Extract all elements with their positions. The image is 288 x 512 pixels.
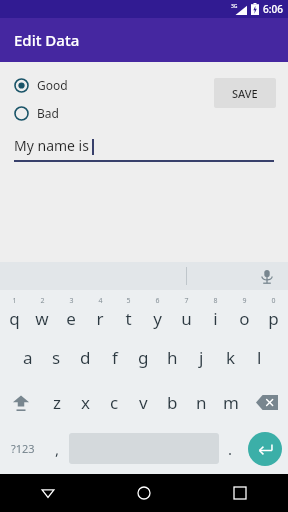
staticText: , bbox=[55, 439, 60, 459]
staticText: t bbox=[125, 307, 132, 330]
staticText: e bbox=[66, 307, 76, 330]
button[interactable]: 2 bbox=[28, 290, 56, 335]
button[interactable]: f bbox=[100, 335, 129, 380]
button[interactable]: . bbox=[219, 425, 242, 472]
button[interactable]: Voice input bbox=[258, 267, 276, 285]
staticText: c bbox=[110, 391, 119, 414]
button[interactable]: Home bbox=[96, 474, 192, 512]
button[interactable]: 1 bbox=[0, 290, 28, 335]
button[interactable]: v bbox=[129, 380, 158, 425]
staticText: a bbox=[23, 346, 33, 369]
staticText: r bbox=[96, 307, 104, 330]
staticText: j bbox=[199, 346, 204, 369]
staticText: 6 bbox=[155, 296, 160, 306]
button[interactable]: b bbox=[158, 380, 187, 425]
staticText: 8 bbox=[213, 296, 218, 306]
staticText: ?123 bbox=[11, 441, 35, 456]
staticText: 4 bbox=[98, 296, 103, 306]
staticText: . bbox=[228, 439, 233, 459]
button[interactable]: SAVE bbox=[214, 78, 276, 108]
staticText: Edit Data bbox=[14, 30, 80, 50]
staticText: SAVE bbox=[232, 86, 258, 101]
staticText: m bbox=[223, 391, 239, 414]
button[interactable]: My name is bbox=[14, 136, 274, 162]
button[interactable]: Recents bbox=[192, 474, 288, 512]
staticText: k bbox=[226, 346, 236, 369]
staticText: 0 bbox=[271, 296, 276, 306]
staticText: f bbox=[112, 346, 118, 369]
staticText: g bbox=[138, 346, 149, 369]
button[interactable]: 6 bbox=[143, 290, 172, 335]
staticText: h bbox=[167, 346, 178, 369]
staticText: 5 bbox=[126, 296, 131, 306]
button[interactable]: a bbox=[13, 335, 42, 380]
button[interactable]: g bbox=[129, 335, 158, 380]
staticText: s bbox=[52, 346, 61, 369]
staticText: b bbox=[167, 391, 178, 414]
staticText: u bbox=[181, 307, 192, 330]
button[interactable]: n bbox=[187, 380, 216, 425]
staticText: n bbox=[196, 391, 207, 414]
staticText: v bbox=[139, 391, 148, 414]
staticText: 3G bbox=[231, 3, 238, 10]
button[interactable]: c bbox=[100, 380, 129, 425]
staticText: o bbox=[239, 307, 250, 330]
staticText: p bbox=[268, 307, 279, 330]
staticText: 2 bbox=[40, 296, 45, 306]
button[interactable]: l bbox=[245, 335, 274, 380]
staticText: q bbox=[9, 307, 20, 330]
button[interactable]: , bbox=[46, 425, 69, 472]
staticText: My name is bbox=[14, 136, 89, 155]
button[interactable]: x bbox=[71, 380, 100, 425]
button[interactable]: d bbox=[71, 335, 100, 380]
staticText: Bad bbox=[37, 105, 59, 121]
button[interactable]: Shift bbox=[0, 380, 42, 425]
button[interactable]: 7 bbox=[172, 290, 201, 335]
staticText: w bbox=[35, 307, 49, 330]
button[interactable]: 8 bbox=[201, 290, 230, 335]
button[interactable]: 9 bbox=[230, 290, 259, 335]
staticText: 3 bbox=[69, 296, 74, 306]
staticText: z bbox=[53, 391, 61, 414]
button[interactable]: Back bbox=[0, 474, 96, 512]
button[interactable]: 3 bbox=[56, 290, 85, 335]
staticText: y bbox=[153, 307, 162, 330]
staticText: l bbox=[257, 346, 262, 369]
button[interactable]: ?123 bbox=[0, 425, 46, 472]
button[interactable]: z bbox=[42, 380, 71, 425]
button[interactable]: Backspace bbox=[245, 380, 288, 425]
staticText: x bbox=[81, 391, 90, 414]
button[interactable]: 0 bbox=[259, 290, 288, 335]
button[interactable]: j bbox=[187, 335, 216, 380]
button[interactable]: 4 bbox=[85, 290, 114, 335]
button[interactable]: Enter bbox=[248, 432, 282, 466]
staticText: 7 bbox=[184, 296, 189, 306]
staticText: d bbox=[80, 346, 91, 369]
button[interactable]: s bbox=[42, 335, 71, 380]
button[interactable]: Bad bbox=[0, 102, 128, 124]
button[interactable]: m bbox=[216, 380, 245, 425]
staticText: 9 bbox=[242, 296, 247, 306]
button[interactable]: 5 bbox=[114, 290, 143, 335]
staticText: i bbox=[213, 307, 218, 330]
staticText: Good bbox=[37, 77, 68, 93]
staticText: 6:06 bbox=[263, 2, 283, 16]
button[interactable]: k bbox=[216, 335, 245, 380]
button[interactable]: h bbox=[158, 335, 187, 380]
button[interactable]: Good bbox=[0, 74, 128, 96]
staticText: 1 bbox=[12, 296, 17, 306]
